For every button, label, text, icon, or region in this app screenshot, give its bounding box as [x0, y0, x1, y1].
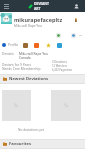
button[interactable]: Profile: [1, 41, 20, 48]
button[interactable]: Send note: [70, 32, 77, 39]
button[interactable]: Menu: [1, 1, 11, 11]
button[interactable]: Avatar: [1, 13, 12, 24]
button[interactable]: Journal: [56, 42, 62, 48]
staticText: ART: [34, 6, 41, 11]
staticText: mikurapefacepltz: [14, 16, 63, 23]
staticText: Deviant for 9 Years: [2, 62, 32, 66]
staticText: Deviant: [2, 51, 19, 55]
staticText: No deviations yet: [18, 128, 44, 132]
staticText: Needs Core Membership: [2, 66, 41, 70]
staticText: DEVIANT: [34, 1, 49, 6]
button[interactable]: Account: [72, 2, 81, 11]
staticText: 0 Deviations: [52, 60, 67, 64]
button[interactable]: Newest Deviations: [0, 75, 85, 83]
staticText: Favourites: [9, 141, 32, 147]
button[interactable]: Favourites: [45, 42, 51, 48]
button[interactable]: Gallery: [22, 42, 28, 48]
staticText: 12 Watchers: [52, 64, 68, 68]
staticText: Canada: [19, 55, 31, 59]
button[interactable]: Favourites: [0, 140, 85, 148]
button[interactable]: Watch: [55, 32, 62, 39]
staticText: 6,432 Pageviews: [52, 68, 73, 72]
button[interactable]: Folders: [33, 42, 39, 48]
staticText: Profile: [8, 42, 19, 47]
staticText: Miku will Rape You: [19, 51, 48, 55]
button[interactable]: Llama badge: [74, 18, 78, 22]
staticText: Miku will Rape You: [14, 24, 42, 28]
staticText: Newest Deviations: [9, 76, 49, 82]
